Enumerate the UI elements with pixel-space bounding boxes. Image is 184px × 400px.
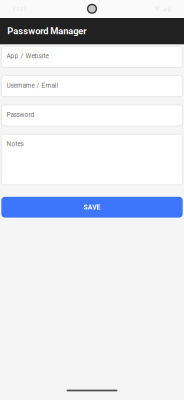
staticText: Password Manager bbox=[7, 26, 86, 37]
button[interactable]: Password bbox=[1, 105, 183, 126]
button[interactable]: App / Website bbox=[1, 46, 183, 67]
button[interactable]: SAVE bbox=[1, 197, 183, 218]
staticText: Username / Email bbox=[6, 82, 58, 89]
button[interactable]: Notes bbox=[1, 134, 183, 185]
button[interactable]: Username / Email bbox=[1, 76, 183, 97]
staticText: Notes bbox=[6, 140, 23, 148]
staticText: Password bbox=[6, 111, 34, 118]
staticText: App / Website bbox=[6, 52, 48, 60]
staticText: SAVE bbox=[83, 203, 100, 211]
